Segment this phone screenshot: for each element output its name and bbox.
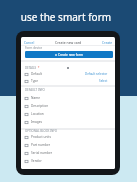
button[interactable]: Images xyxy=(25,118,108,126)
staticText: Default xyxy=(31,72,42,76)
staticText: Serial number xyxy=(31,151,53,155)
staticText: * xyxy=(37,66,40,70)
staticText: DEFAULT INFO xyxy=(25,88,45,92)
staticText: Select xyxy=(99,79,108,83)
button[interactable]: Name xyxy=(25,94,108,102)
staticText: Form device xyxy=(25,46,43,50)
staticText: Default selector xyxy=(85,72,108,76)
staticText: DETAILS xyxy=(25,66,37,70)
button[interactable]: Type xyxy=(25,77,108,85)
button[interactable]: Location xyxy=(25,110,108,118)
staticText: Name xyxy=(31,96,40,100)
button[interactable]: Create new form xyxy=(25,51,113,58)
staticText: Images xyxy=(31,120,43,124)
staticText: use the smart form xyxy=(0,10,132,24)
button[interactable]: Serial number xyxy=(25,149,108,157)
staticText: Part number xyxy=(31,143,51,147)
button[interactable]: Create xyxy=(102,40,113,44)
button[interactable]: Cancel xyxy=(24,40,35,44)
staticText: Create new card xyxy=(55,40,82,45)
staticText: Location xyxy=(31,112,44,116)
staticText: Create xyxy=(102,40,113,44)
button[interactable]: Part number xyxy=(25,141,108,149)
button[interactable]: Default xyxy=(25,70,108,78)
staticText: Vendor xyxy=(31,159,42,163)
staticText: OPTIONAL BLOCK INFO xyxy=(25,129,58,133)
staticText: Type xyxy=(31,79,39,83)
staticText: Create new form xyxy=(58,53,83,57)
staticText: Description xyxy=(31,104,49,108)
button[interactable]: Vendor xyxy=(25,157,108,165)
staticText: Cancel xyxy=(24,40,35,44)
staticText: Product units xyxy=(31,135,51,139)
button[interactable]: Description xyxy=(25,102,108,110)
button[interactable]: Product units xyxy=(25,133,108,141)
